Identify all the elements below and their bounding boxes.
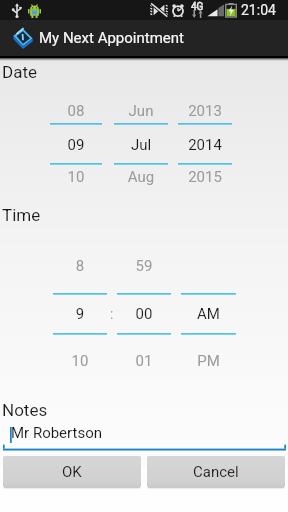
staticText: Aug xyxy=(114,168,168,186)
button[interactable]: 08 xyxy=(50,96,102,192)
button[interactable]: Mr Robertson xyxy=(3,420,286,451)
staticText: Jul xyxy=(114,136,168,154)
staticText: Notes xyxy=(2,400,48,420)
staticText: 4G xyxy=(191,1,204,13)
button[interactable]: 2013 xyxy=(178,96,232,192)
staticText: : xyxy=(110,306,114,322)
button[interactable]: 59 xyxy=(117,250,171,374)
staticText: Date xyxy=(2,62,37,82)
button[interactable]: AM xyxy=(181,250,236,374)
staticText: 21:04 xyxy=(241,2,276,18)
staticText: Mr Robertson xyxy=(11,424,103,442)
staticText: OK xyxy=(62,463,82,481)
button[interactable]: Appointments xyxy=(0,20,288,56)
staticText: 2015 xyxy=(178,168,232,186)
button[interactable]: Cancel xyxy=(147,456,285,487)
staticText: 00 xyxy=(117,305,171,323)
staticText: 59 xyxy=(117,257,171,275)
staticText: 09 xyxy=(50,136,102,154)
staticText: AM xyxy=(181,305,236,323)
button[interactable]: Jun xyxy=(114,96,168,192)
staticText: Jun xyxy=(114,102,168,120)
staticText: 08 xyxy=(50,102,102,120)
button[interactable]: 8 xyxy=(53,250,107,374)
staticText: PM xyxy=(181,352,236,370)
staticText: 9 xyxy=(53,305,107,323)
staticText: Time xyxy=(2,205,41,225)
staticText: 10 xyxy=(50,168,102,186)
staticText: 2013 xyxy=(178,102,232,120)
other: Appointments xyxy=(12,27,34,49)
button[interactable]: OK xyxy=(3,456,141,487)
staticText: 10 xyxy=(53,352,107,370)
staticText: Cancel xyxy=(193,463,239,481)
staticText: 8 xyxy=(53,257,107,275)
staticText: 01 xyxy=(117,352,171,370)
staticText: My Next Appointment xyxy=(39,29,184,47)
staticText: 2014 xyxy=(178,136,232,154)
